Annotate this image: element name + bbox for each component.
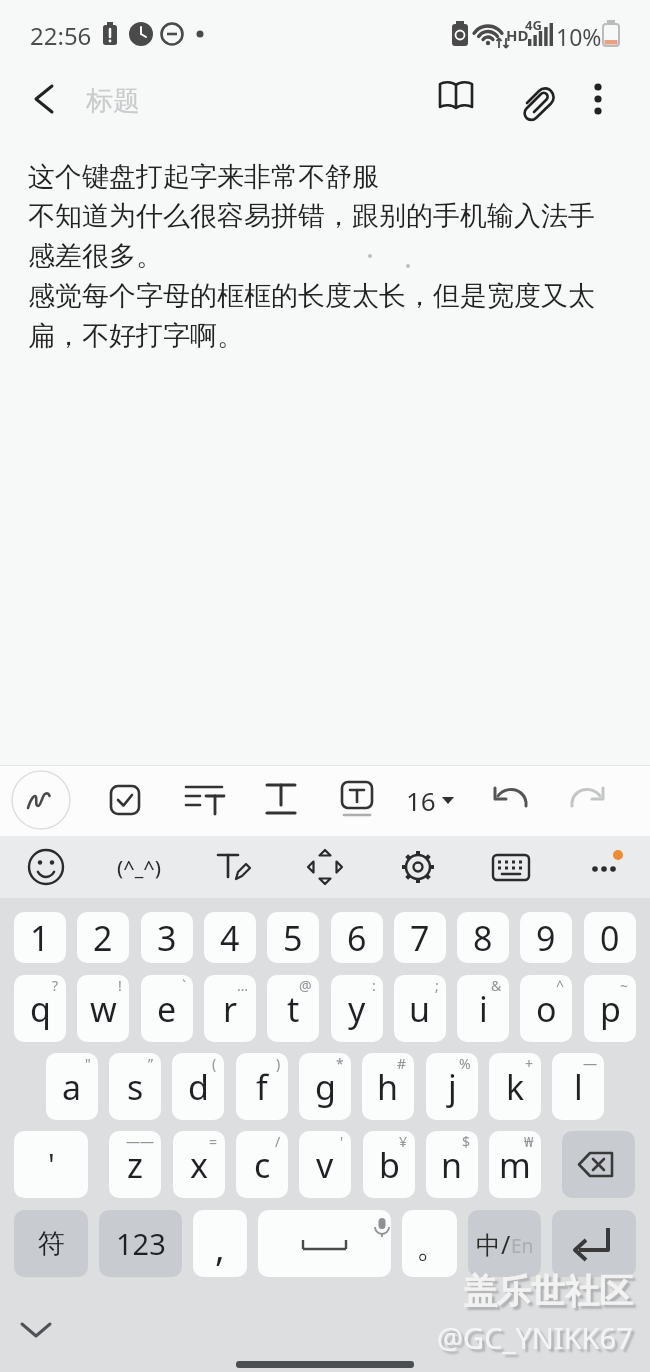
button[interactable]: 。 [402,1210,457,1277]
button[interactable]: 2 [77,912,129,963]
button[interactable]: 5 [267,912,319,963]
staticText: 。 [416,1226,448,1266]
button[interactable]: c [236,1131,288,1198]
button[interactable] [394,843,442,891]
button[interactable]: q [14,975,66,1042]
staticText: a [62,1064,82,1110]
button[interactable]: j [426,1053,478,1120]
staticText: HD [506,25,529,45]
staticText: e [157,986,177,1032]
staticText: 这个键盘打起字来非常不舒服 不知道为什么很容易拼错，跟别的手机输入法手 感差很多… [28,160,595,354]
staticText: p [600,986,621,1032]
button[interactable]: 1 [14,912,66,963]
staticText: 盖乐世社区 [463,1270,633,1313]
button[interactable] [11,770,71,830]
staticText: # [397,1054,407,1073]
staticText: — [583,1054,597,1073]
button[interactable] [258,1210,391,1277]
button[interactable]: p [584,975,636,1042]
button[interactable] [333,776,381,824]
staticText: t [287,986,300,1032]
staticText: 0 [600,915,620,961]
button[interactable]: 4 [204,912,256,963]
button[interactable] [257,776,305,824]
button[interactable]: a [46,1053,98,1120]
button[interactable] [10,1310,62,1350]
staticText: = [209,1132,218,1151]
button[interactable] [101,776,149,824]
button[interactable]: b [363,1131,415,1198]
button[interactable] [434,77,478,121]
staticText: s [127,1064,144,1110]
button[interactable]: , [193,1210,247,1277]
staticText: 标题 [86,84,140,118]
button[interactable] [24,83,68,127]
button[interactable] [208,843,256,891]
staticText: (^_^) [117,854,162,881]
staticText: 9 [536,915,556,961]
staticText: 22:56 [30,19,92,52]
staticText: 8 [473,915,493,961]
button[interactable]: h [362,1053,414,1120]
button[interactable]: y [331,975,383,1042]
button[interactable]: r [204,975,256,1042]
button[interactable]: d [172,1053,224,1120]
staticText: En [511,1233,534,1259]
staticText: ^ [556,976,565,995]
staticText: ) [276,1054,281,1073]
staticText: 123 [116,1224,166,1263]
button[interactable]: 123 [99,1210,182,1277]
staticText: 3 [157,915,177,961]
button[interactable]: s [109,1053,161,1120]
staticText: 符 [38,1227,65,1261]
button[interactable]: t [267,975,319,1042]
button[interactable]: ' [14,1131,88,1198]
button[interactable]: v [299,1131,351,1198]
button[interactable]: (^_^) [104,843,174,891]
button[interactable] [486,776,534,824]
staticText: ' [48,1144,55,1185]
button[interactable]: w [77,975,129,1042]
staticText: , [215,1223,225,1272]
button[interactable]: m [489,1131,541,1198]
button[interactable] [22,843,70,891]
button[interactable]: u [394,975,446,1042]
staticText: l [574,1064,583,1110]
button[interactable]: l [552,1053,604,1120]
button[interactable]: o [520,975,572,1042]
button[interactable]: i [457,975,509,1042]
button[interactable]: x [173,1131,225,1198]
button[interactable] [180,776,228,824]
button[interactable]: 7 [394,912,446,963]
button[interactable] [301,843,349,891]
staticText: q [30,986,51,1032]
button[interactable] [580,843,628,891]
button[interactable]: 0 [584,912,636,963]
button[interactable]: z [109,1131,161,1198]
button[interactable]: 中/ [468,1210,541,1277]
button[interactable] [576,77,620,121]
button[interactable] [552,1210,636,1277]
button[interactable]: 符 [14,1210,88,1277]
button[interactable]: n [426,1131,478,1198]
staticText: ` [182,976,186,995]
button[interactable] [487,843,535,891]
button[interactable]: 6 [331,912,383,963]
button[interactable] [564,776,612,824]
staticText: ! [118,976,122,995]
button[interactable] [514,77,558,121]
button[interactable]: g [299,1053,351,1120]
staticText: 中/ [476,1227,511,1261]
staticText: —— [126,1132,154,1151]
button[interactable]: k [489,1053,541,1120]
staticText: ¥ [399,1132,408,1151]
button[interactable]: 8 [457,912,509,963]
button[interactable]: e [141,975,193,1042]
button[interactable]: 3 [141,912,193,963]
button[interactable] [562,1131,635,1198]
staticText: u [409,986,431,1032]
button[interactable]: 16 [398,776,464,824]
button[interactable]: f [236,1053,288,1120]
staticText: ' [340,1132,344,1151]
button[interactable]: 9 [520,912,572,963]
